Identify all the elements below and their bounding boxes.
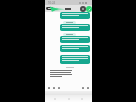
button[interactable]: Recents [79,96,85,102]
button[interactable]: Microphone [82,87,84,89]
button[interactable]: Send [87,87,89,89]
button[interactable]: Back [52,96,58,102]
button[interactable]: Camera [58,87,60,89]
button[interactable] [60,24,90,31]
button[interactable] [63,33,76,36]
button[interactable] [60,55,90,64]
button[interactable]: New message [86,6,92,12]
button[interactable]: Attach [53,87,55,89]
button[interactable]: Emoji [48,87,50,89]
button[interactable] [60,12,90,19]
button[interactable]: Profile [80,6,86,12]
staticText: 10:24 [48,1,56,5]
button[interactable] [60,45,90,52]
button[interactable] [63,21,76,24]
button[interactable] [60,36,90,43]
button[interactable]: Home [66,96,72,102]
